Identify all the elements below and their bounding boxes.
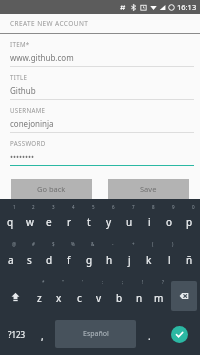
- staticText: %: [71, 241, 75, 247]
- staticText: a: [8, 253, 14, 267]
- staticText: !: [142, 279, 144, 285]
- staticText: 8: [152, 204, 155, 210]
- staticText: d: [46, 253, 53, 267]
- button[interactable]: @: [1, 240, 20, 276]
- staticText: ,: [41, 329, 44, 343]
- button[interactable]: +: [119, 240, 139, 276]
- button[interactable]: Backspace: [171, 281, 197, 311]
- staticText: ": [62, 279, 64, 285]
- staticText: &: [91, 241, 95, 247]
- staticText: b: [116, 291, 123, 305]
- button[interactable]: ñ: [179, 240, 199, 276]
- staticText: 1: [13, 204, 16, 210]
- staticText: i: [148, 215, 151, 229]
- staticText: ?: [162, 279, 164, 285]
- staticText: +: [132, 241, 135, 247]
- staticText: :: [102, 279, 104, 285]
- button[interactable]: Enter: [159, 316, 199, 352]
- button[interactable]: *: [30, 278, 49, 314]
- staticText: s: [27, 253, 32, 267]
- staticText: 3: [52, 204, 55, 210]
- button[interactable]: 5: [79, 203, 99, 238]
- staticText: 16:13: [177, 2, 197, 12]
- staticText: Github: [10, 85, 36, 96]
- staticText: (: [152, 241, 154, 247]
- button[interactable]: #: [20, 240, 39, 276]
- staticText: 2: [32, 204, 35, 210]
- button[interactable]: 1: [1, 203, 20, 238]
- button[interactable]: 3: [39, 203, 59, 238]
- staticText: @: [12, 241, 17, 247]
- staticText: -: [112, 241, 114, 247]
- staticText: f: [67, 253, 71, 267]
- staticText: ?123: [8, 329, 26, 340]
- staticText: r: [67, 215, 72, 229]
- staticText: t: [87, 215, 91, 229]
- staticText: CREATE NEW ACCOUNT: [10, 19, 89, 28]
- button[interactable]: PASSWORD: [0, 139, 200, 172]
- button[interactable]: ;: [109, 278, 129, 314]
- button[interactable]: 2: [20, 203, 39, 238]
- staticText: USERNAME: [10, 106, 46, 114]
- staticText: Save: [140, 184, 157, 194]
- button[interactable]: Español: [55, 320, 136, 348]
- staticText: z: [37, 291, 42, 305]
- staticText: .: [148, 329, 151, 343]
- staticText: conejoninja: [10, 118, 54, 129]
- staticText: 4: [72, 204, 75, 210]
- button[interactable]: ": [49, 278, 69, 314]
- button[interactable]: ): [159, 240, 179, 276]
- button[interactable]: USERNAME: [0, 106, 200, 139]
- staticText: ñ: [186, 253, 193, 267]
- staticText: ••••••••: [10, 151, 35, 162]
- button[interactable]: TITLE: [0, 73, 200, 106]
- button[interactable]: .: [139, 316, 159, 352]
- button[interactable]: 8: [139, 203, 159, 238]
- button[interactable]: 4: [59, 203, 79, 238]
- staticText: o: [166, 215, 173, 229]
- button[interactable]: &: [79, 240, 99, 276]
- button[interactable]: Shift: [1, 278, 30, 314]
- staticText: n: [136, 291, 143, 305]
- staticText: q: [7, 215, 14, 229]
- button[interactable]: 6: [99, 203, 119, 238]
- staticText: p: [186, 215, 193, 229]
- staticText: TITLE: [10, 73, 28, 81]
- staticText: 6: [112, 204, 115, 210]
- button[interactable]: 7: [119, 203, 139, 238]
- staticText: k: [146, 253, 152, 267]
- staticText: x: [56, 291, 62, 305]
- staticText: Go back: [37, 184, 66, 194]
- staticText: e: [46, 215, 52, 229]
- button[interactable]: Save: [108, 179, 189, 199]
- button[interactable]: !: [129, 278, 149, 314]
- button[interactable]: $: [39, 240, 59, 276]
- staticText: $: [52, 241, 55, 247]
- staticText: v: [96, 291, 102, 305]
- staticText: h: [106, 253, 113, 267]
- button[interactable]: :: [89, 278, 109, 314]
- button[interactable]: (: [139, 240, 159, 276]
- staticText: ': [82, 279, 84, 285]
- staticText: l: [168, 253, 171, 267]
- button[interactable]: 9: [159, 203, 179, 238]
- button[interactable]: ,: [32, 316, 52, 352]
- staticText: c: [77, 291, 82, 305]
- staticText: Español: [83, 329, 109, 339]
- staticText: 9: [172, 204, 175, 210]
- button[interactable]: ?123: [1, 316, 32, 352]
- button[interactable]: -: [99, 240, 119, 276]
- staticText: y: [106, 215, 112, 229]
- staticText: w: [26, 215, 34, 229]
- staticText: 7: [132, 204, 135, 210]
- staticText: j: [128, 253, 131, 267]
- button[interactable]: ITEM*: [0, 40, 200, 73]
- staticText: m: [154, 291, 164, 305]
- staticText: #: [32, 241, 35, 247]
- staticText: g: [86, 253, 93, 267]
- button[interactable]: Go back: [11, 179, 92, 199]
- button[interactable]: 0: [179, 203, 199, 238]
- button[interactable]: ': [69, 278, 89, 314]
- button[interactable]: %: [59, 240, 79, 276]
- button[interactable]: ?: [149, 278, 169, 314]
